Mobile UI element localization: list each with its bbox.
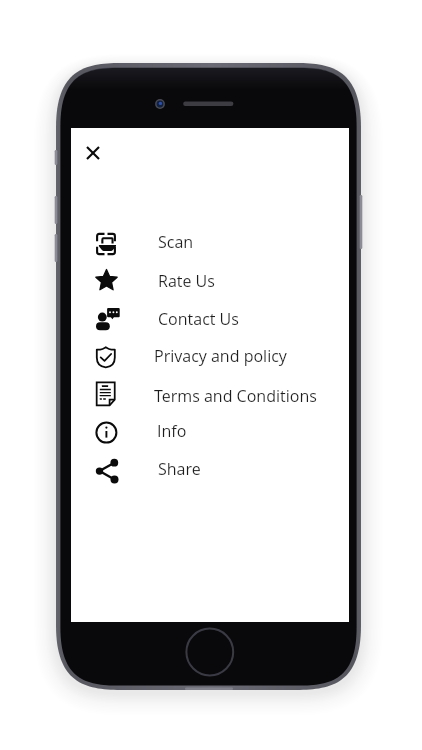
button[interactable]: Rate Us	[71, 262, 349, 300]
staticText: Contact Us	[158, 308, 239, 330]
staticText: Scan	[158, 231, 194, 253]
staticText: Info	[157, 420, 187, 442]
staticText: Terms and Conditions	[154, 385, 317, 407]
button[interactable]: Terms and Conditions	[71, 376, 349, 414]
button[interactable]: Close	[72, 132, 114, 174]
button[interactable]: Scan	[71, 225, 349, 263]
staticText: Rate Us	[158, 270, 215, 292]
staticText: Privacy and policy	[154, 345, 287, 367]
button[interactable]: Privacy and policy	[71, 338, 349, 376]
button[interactable]: Contact Us	[71, 300, 349, 338]
staticText: Share	[158, 458, 201, 480]
button[interactable]: Share	[71, 452, 349, 490]
button[interactable]: Info	[71, 414, 349, 452]
